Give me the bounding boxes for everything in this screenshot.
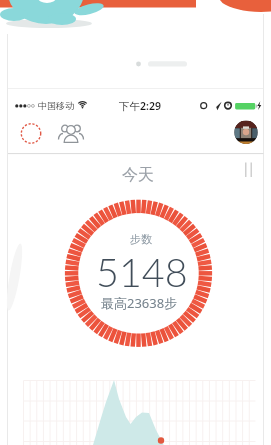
button[interactable] bbox=[19, 121, 43, 145]
staticText: 中国移动 bbox=[38, 100, 74, 111]
staticText: 步数 bbox=[130, 232, 152, 246]
staticText: 今天 bbox=[122, 165, 154, 185]
staticText: 最高23638步 bbox=[101, 294, 178, 312]
staticText: 下午2:29 bbox=[119, 99, 161, 113]
staticText: 5148 bbox=[96, 248, 188, 295]
button[interactable] bbox=[234, 120, 258, 144]
button[interactable] bbox=[58, 121, 84, 147]
